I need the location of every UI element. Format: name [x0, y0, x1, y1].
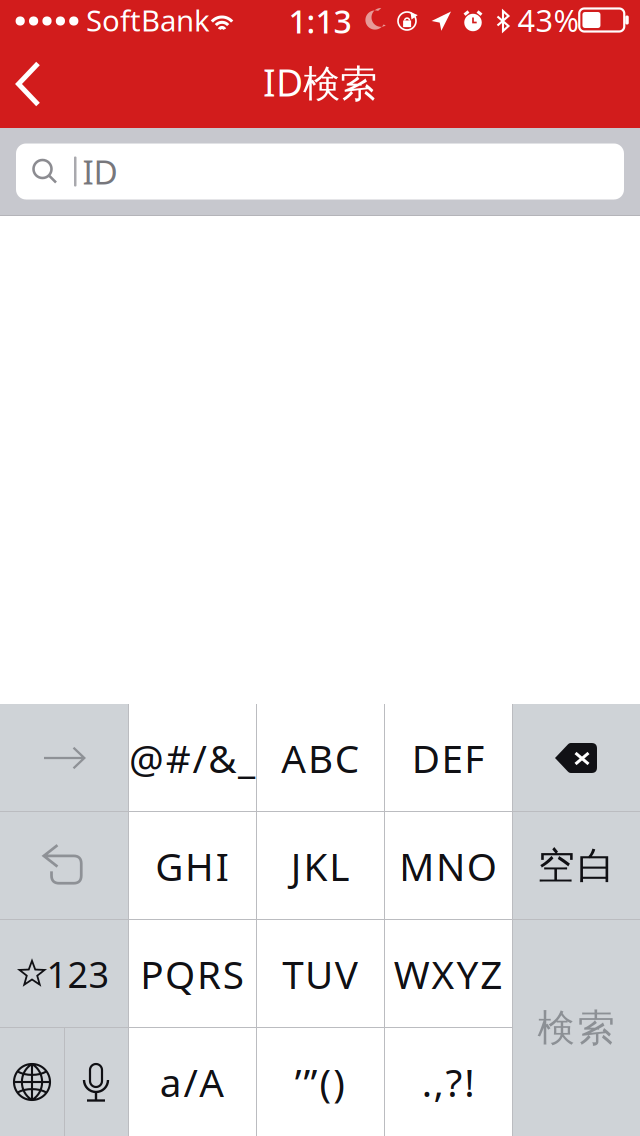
button[interactable]: PQRS: [128, 920, 256, 1028]
button[interactable]: GHI: [128, 812, 256, 920]
staticText: ABC: [281, 732, 359, 784]
staticText: 123: [46, 950, 109, 998]
staticText: ID検索: [263, 57, 377, 107]
button[interactable]: Back: [0, 40, 56, 128]
button[interactable]: 123: [0, 920, 128, 1028]
staticText: 43%: [517, 0, 578, 40]
staticText: ID: [82, 149, 117, 194]
staticText: JKL: [291, 840, 349, 892]
staticText: 検索: [537, 1005, 614, 1051]
button[interactable]: Delete: [512, 705, 640, 811]
button[interactable]: a/A: [128, 1028, 256, 1136]
staticText: WXYZ: [394, 948, 502, 1000]
button[interactable]: ID: [16, 143, 624, 199]
button[interactable]: Undo: [0, 812, 128, 920]
button[interactable]: Next candidate: [0, 705, 128, 811]
staticText: ’”(): [295, 1056, 345, 1108]
button[interactable]: ABC: [256, 704, 384, 812]
button[interactable]: TUV: [256, 920, 384, 1028]
button[interactable]: .,?!: [384, 1028, 512, 1136]
button[interactable]: @#/&_: [128, 704, 256, 812]
staticText: @#/&_: [129, 732, 255, 784]
staticText: GHI: [155, 840, 229, 892]
button[interactable]: WXYZ: [384, 920, 512, 1028]
button[interactable]: Dictate: [64, 1027, 128, 1136]
staticText: TUV: [282, 948, 358, 1000]
button[interactable]: ’”(): [256, 1028, 384, 1136]
staticText: a/A: [160, 1056, 224, 1108]
staticText: 空白: [537, 843, 614, 889]
button[interactable]: Switch keyboard: [0, 1027, 64, 1136]
staticText: SoftBank: [86, 0, 210, 39]
staticText: MNO: [399, 840, 497, 892]
button[interactable]: JKL: [256, 812, 384, 920]
button[interactable]: MNO: [384, 812, 512, 920]
staticText: 1:13: [288, 0, 351, 42]
button[interactable]: 空白: [512, 812, 640, 920]
staticText: PQRS: [140, 948, 244, 1000]
button[interactable]: DEF: [384, 704, 512, 812]
button[interactable]: 検索: [512, 920, 640, 1136]
staticText: .,?!: [422, 1056, 474, 1108]
staticText: DEF: [412, 732, 484, 784]
